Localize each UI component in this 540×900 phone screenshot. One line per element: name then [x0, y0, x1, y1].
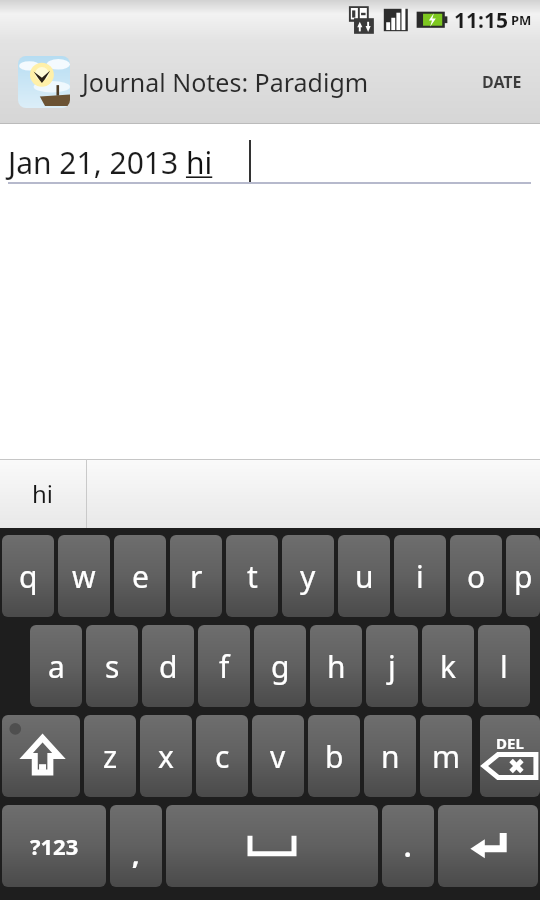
staticText: ?123	[30, 831, 79, 861]
button[interactable]: q	[2, 535, 54, 617]
staticText: u	[355, 556, 374, 597]
staticText: Journal Notes: Paradigm	[82, 65, 369, 99]
staticText: DEL	[496, 733, 524, 753]
staticText: Jan 21, 2013 hi	[8, 142, 213, 183]
staticText: DATE	[482, 71, 522, 93]
button[interactable]: Symbols	[2, 805, 106, 887]
staticText: t	[247, 556, 258, 597]
button[interactable]: i	[394, 535, 446, 617]
button[interactable]: x	[140, 715, 192, 797]
staticText: b	[325, 736, 344, 777]
button[interactable]: e	[114, 535, 166, 617]
staticText: r	[190, 556, 203, 597]
staticText: .	[404, 829, 412, 864]
button[interactable]: Space	[166, 805, 378, 887]
staticText: c	[215, 736, 230, 777]
button[interactable]: s	[86, 625, 138, 707]
staticText: m	[432, 736, 461, 777]
staticText: a	[48, 646, 65, 687]
button[interactable]: f	[198, 625, 250, 707]
staticText: f	[219, 646, 230, 687]
button[interactable]: ,	[110, 805, 162, 887]
button[interactable]	[0, 124, 540, 459]
button[interactable]: v	[252, 715, 304, 797]
button[interactable]: l	[478, 625, 530, 707]
staticText: hi	[32, 477, 54, 510]
button[interactable]: r	[170, 535, 222, 617]
staticText: 11:15	[454, 6, 508, 35]
button[interactable]: k	[422, 625, 474, 707]
button[interactable]: a	[30, 625, 82, 707]
button[interactable]: j	[366, 625, 418, 707]
button[interactable]: h	[310, 625, 362, 707]
button[interactable]: d	[142, 625, 194, 707]
button[interactable]: b	[308, 715, 360, 797]
button[interactable]: u	[338, 535, 390, 617]
staticText: l	[500, 646, 508, 687]
staticText: w	[72, 556, 96, 597]
staticText: i	[416, 556, 424, 597]
button[interactable]: w	[58, 535, 110, 617]
staticText: g	[271, 646, 290, 687]
button[interactable]: hi	[0, 459, 86, 528]
staticText: n	[381, 736, 400, 777]
button[interactable]: Enter	[438, 805, 538, 887]
staticText: q	[19, 556, 38, 597]
staticText: ,	[132, 837, 140, 872]
staticText: z	[103, 736, 118, 777]
staticText: p	[514, 556, 533, 597]
button[interactable]: o	[450, 535, 502, 617]
staticText: y	[300, 556, 316, 597]
button[interactable]: DATE	[464, 40, 540, 124]
button[interactable]: c	[196, 715, 248, 797]
staticText: x	[158, 736, 174, 777]
staticText: v	[270, 736, 286, 777]
button[interactable]: g	[254, 625, 306, 707]
staticText: s	[105, 646, 120, 687]
button[interactable]: n	[364, 715, 416, 797]
staticText: e	[132, 556, 149, 597]
staticText: h	[327, 646, 346, 687]
button[interactable]: Delete	[480, 715, 540, 797]
button[interactable]: Shift	[2, 715, 80, 797]
staticText: PM	[511, 11, 532, 29]
staticText: o	[467, 556, 486, 597]
button[interactable]: p	[506, 535, 540, 617]
button[interactable]: .	[382, 805, 434, 887]
button[interactable]: y	[282, 535, 334, 617]
staticText: j	[388, 646, 396, 687]
staticText: d	[159, 646, 178, 687]
staticText: k	[440, 646, 457, 687]
button[interactable]: z	[84, 715, 136, 797]
button[interactable]: m	[420, 715, 472, 797]
button[interactable]: t	[226, 535, 278, 617]
